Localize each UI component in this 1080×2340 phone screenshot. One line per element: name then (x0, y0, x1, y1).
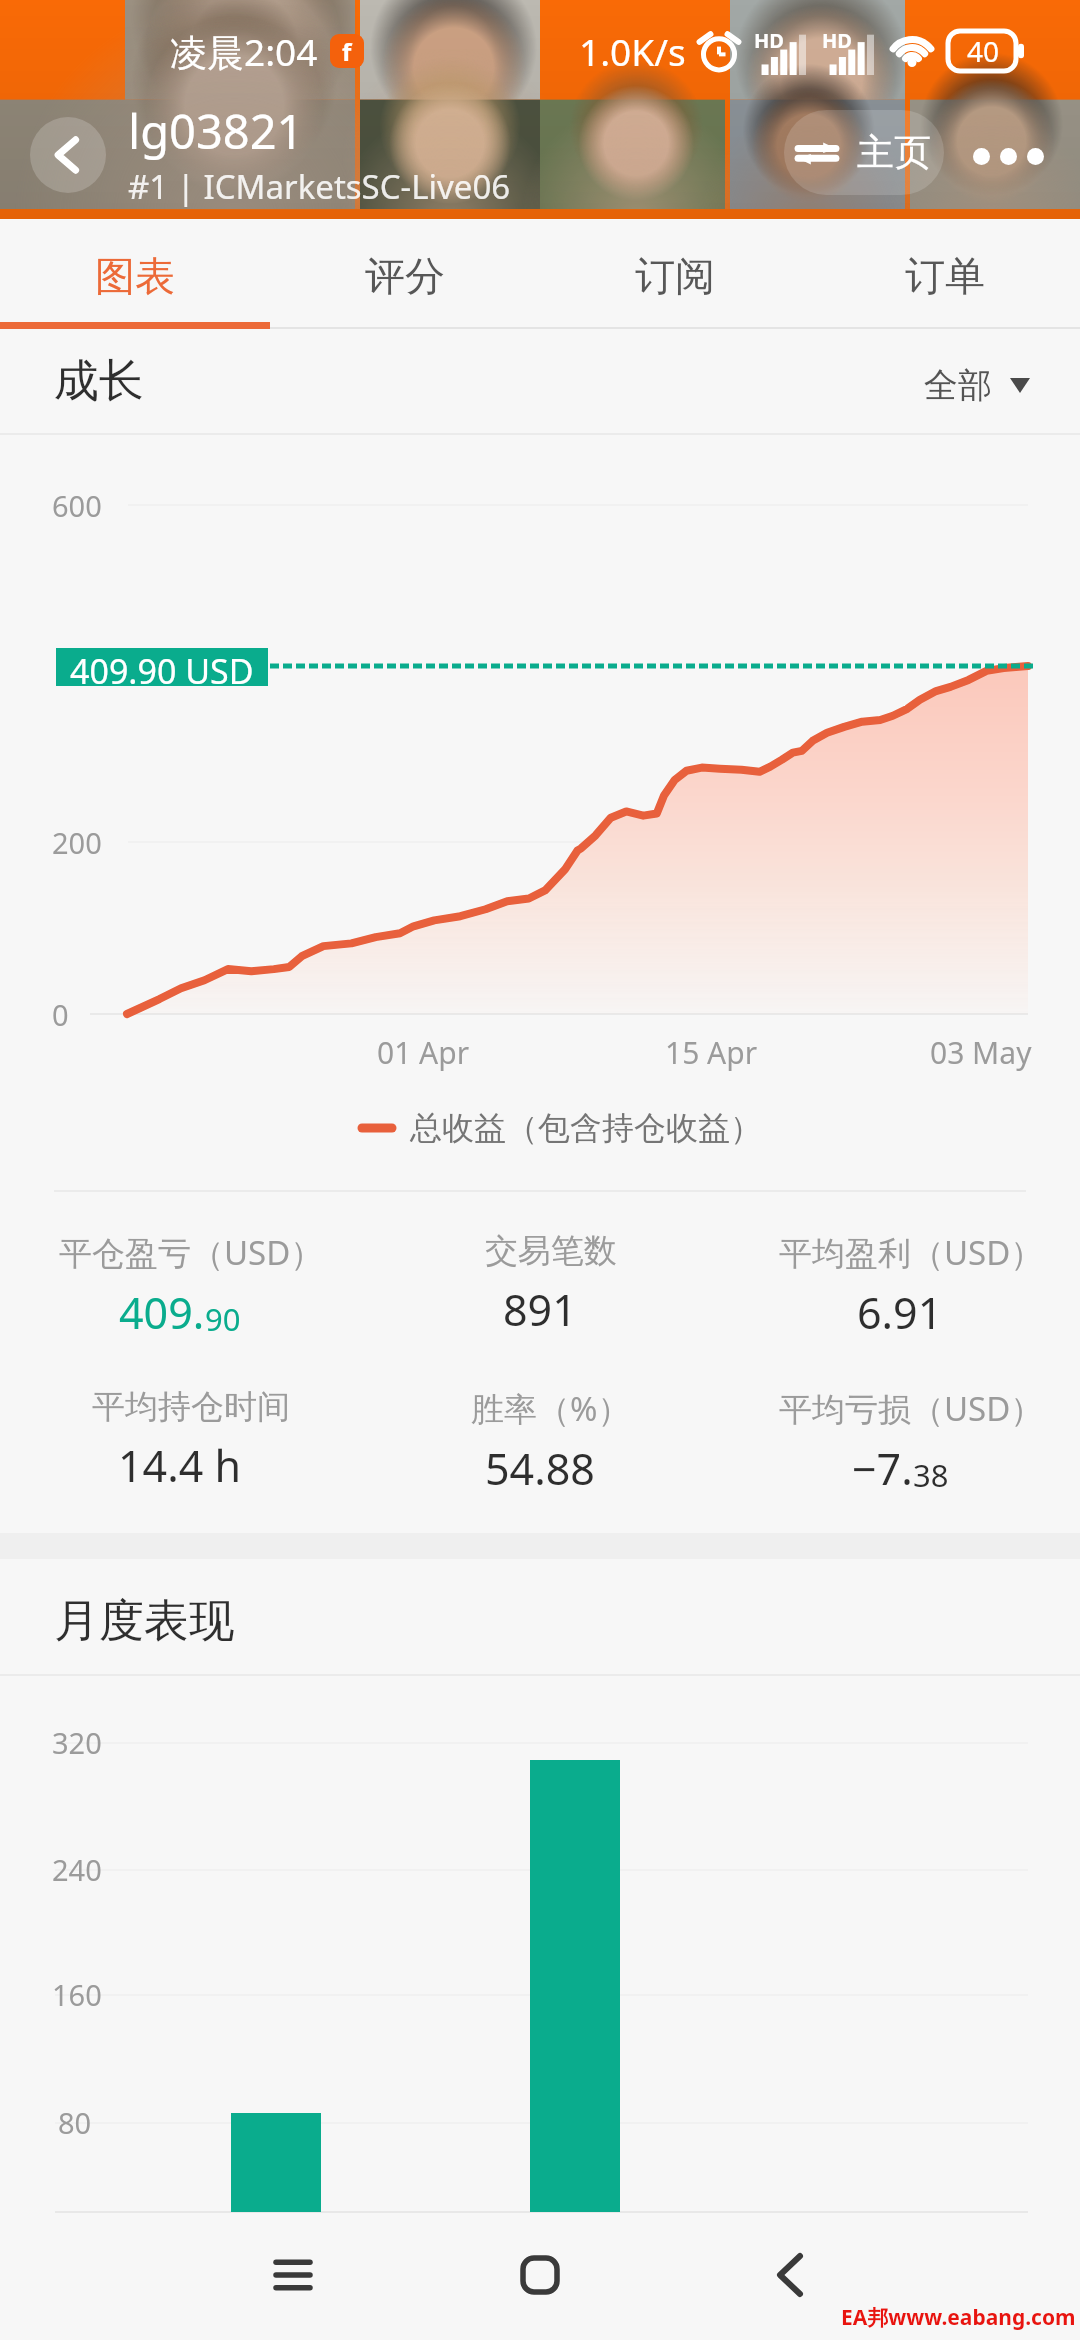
staticText: 总收益（包含持仓收益） (410, 1108, 762, 1148)
staticText: 14.4 h (118, 1436, 242, 1495)
staticText: 40 (967, 32, 1000, 70)
button[interactable]: 主页 (784, 110, 944, 195)
staticText: #1 | ICMarketsSC-Live06 (128, 164, 511, 209)
staticText: 80 (58, 2103, 92, 2142)
staticText: f (342, 35, 352, 68)
staticText: 90 (205, 1298, 241, 1340)
button[interactable]: 图表 (0, 219, 270, 329)
staticText: HD (754, 27, 784, 54)
staticText: 月度表现 (54, 1593, 234, 1650)
staticText: 交易笔数 (485, 1230, 617, 1272)
staticText: HD (822, 27, 852, 54)
button[interactable]: 订单 (810, 219, 1080, 329)
button[interactable]: Recents (232, 2214, 354, 2336)
button[interactable]: Back (729, 2214, 851, 2336)
staticText: 240 (52, 1850, 102, 1889)
staticText: 平均持仓时间 (92, 1386, 290, 1428)
staticText: 891 (503, 1280, 577, 1339)
button[interactable]: 全部 (924, 360, 1030, 403)
staticText: 订阅 (635, 251, 715, 301)
staticText: 凌晨2:04 (170, 26, 318, 77)
button[interactable]: Home (479, 2214, 601, 2336)
staticText: 胜率（%） (471, 1386, 631, 1431)
staticText: 409.90 USD (70, 648, 254, 686)
staticText: 320 (52, 1723, 102, 1762)
staticText: 成长 (54, 353, 144, 410)
button[interactable]: 评分 (270, 219, 540, 329)
staticText: 主页 (857, 129, 931, 176)
staticText: EA邦www.eabang.com (841, 2303, 1076, 2332)
staticText: 54.88 (485, 1439, 595, 1498)
staticText: 评分 (365, 251, 445, 301)
button[interactable]: 订阅 (540, 219, 810, 329)
staticText: 订单 (905, 251, 985, 301)
staticText: 38 (913, 1454, 949, 1496)
staticText: 图表 (95, 251, 175, 301)
staticText: 平均盈利（USD） (779, 1230, 1044, 1275)
staticText: 03 May (930, 1032, 1032, 1073)
staticText: 全部 (924, 364, 992, 407)
staticText: 160 (52, 1975, 102, 2014)
staticText: 409. (119, 1283, 205, 1342)
staticText: −7. (852, 1439, 913, 1498)
staticText: lg03821 (128, 99, 304, 163)
staticText: 平均亏损（USD） (779, 1386, 1044, 1431)
button[interactable]: More options (960, 124, 1056, 188)
staticText: 15 Apr (665, 1032, 758, 1073)
staticText: 1.0K/s (579, 26, 686, 76)
button[interactable]: Back (30, 117, 106, 193)
staticText: 6.91 (857, 1283, 943, 1342)
staticText: 600 (52, 486, 102, 525)
staticText: 平仓盈亏（USD） (59, 1230, 324, 1275)
staticText: 0 (52, 995, 69, 1034)
staticText: 01 Apr (377, 1032, 470, 1073)
staticText: 200 (52, 823, 102, 862)
